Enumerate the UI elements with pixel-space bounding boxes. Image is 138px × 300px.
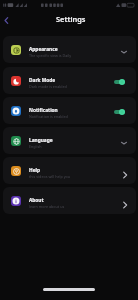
button[interactable]: Back: [1, 15, 12, 26]
button[interactable]: Expand: [119, 47, 128, 56]
staticText: About: [29, 197, 44, 204]
staticText: Appearance: [29, 46, 58, 53]
button[interactable]: Toggle: [114, 109, 125, 115]
button[interactable]: Help: [3, 157, 136, 184]
button[interactable]: About: [3, 187, 136, 214]
staticText: Notification: [29, 107, 58, 114]
staticText: Help: [29, 167, 40, 174]
button[interactable]: Open: [120, 170, 129, 179]
staticText: Dark mode is enabled: [29, 84, 67, 89]
staticText: The specific view is Daily: [29, 53, 72, 58]
button[interactable]: Toggle: [114, 79, 125, 85]
button[interactable]: Notification: [3, 97, 136, 124]
staticText: English: [29, 144, 42, 149]
staticText: Language: [29, 137, 53, 144]
button[interactable]: Appearance: [3, 36, 136, 63]
button[interactable]: Dark Mode: [3, 67, 136, 94]
staticText: learn more about us: [29, 204, 65, 209]
staticText: Dark Mode: [29, 77, 56, 84]
staticText: Notification is enabled: [29, 114, 68, 119]
staticText: this videos will help you: [29, 174, 71, 179]
button[interactable]: Expand: [119, 138, 128, 147]
button[interactable]: Open: [120, 200, 129, 209]
button[interactable]: Language: [3, 127, 136, 154]
staticText: Settings: [56, 14, 86, 24]
